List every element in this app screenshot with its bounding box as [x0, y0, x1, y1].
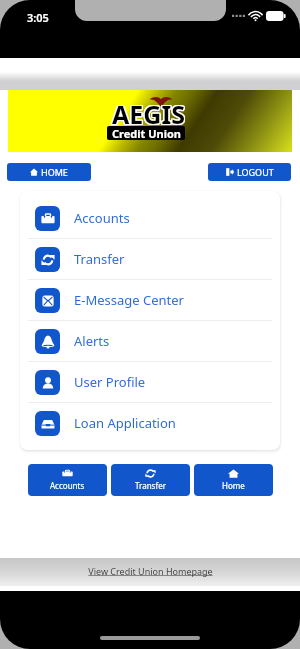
staticText: Credit Union [112, 126, 181, 140]
staticText: Home [222, 480, 245, 491]
staticText: AEGIS [112, 98, 185, 132]
button[interactable]: LOGOUT [208, 163, 291, 181]
button[interactable]: Loan Application [20, 403, 280, 443]
button[interactable]: Transfer [20, 239, 280, 279]
staticText: E-Message Center [74, 291, 184, 309]
staticText: HOME [41, 166, 68, 178]
staticText: Alerts [74, 332, 110, 350]
staticText: AEGIS [113, 96, 186, 130]
staticText: Loan Application [74, 414, 176, 432]
staticText: Transfer [135, 480, 167, 491]
staticText: AEGIS [111, 96, 184, 130]
staticText: AEGIS [112, 97, 185, 131]
button[interactable]: Transfer [111, 464, 190, 496]
staticText: Transfer [74, 250, 125, 268]
staticText: User Profile [74, 373, 146, 391]
staticText: AEGIS [111, 98, 184, 132]
button[interactable]: E-Message Center [20, 280, 280, 320]
staticText: AEGIS [111, 97, 184, 131]
staticText: 3:05 [27, 10, 49, 25]
staticText: AEGIS [112, 96, 185, 130]
button[interactable]: Accounts [20, 198, 280, 238]
staticText: AEGIS [113, 98, 186, 132]
staticText: Accounts [74, 209, 130, 227]
button[interactable]: View Credit Union Homepage [88, 565, 213, 577]
button[interactable]: Alerts [20, 321, 280, 361]
button[interactable]: HOME [7, 163, 91, 181]
button[interactable]: Accounts [28, 464, 107, 496]
staticText: Accounts [50, 480, 85, 491]
staticText: AEGIS [113, 97, 186, 131]
button[interactable]: User Profile [20, 362, 280, 402]
button[interactable]: Home [194, 464, 273, 496]
staticText: LOGOUT [237, 166, 274, 178]
